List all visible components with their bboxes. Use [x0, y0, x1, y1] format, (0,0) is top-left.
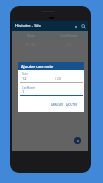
- button[interactable]: Note: [12, 31, 50, 40]
- staticText: / 20: [55, 76, 61, 80]
- button[interactable]: Search: [80, 23, 87, 30]
- button[interactable]: Coefficient: [50, 31, 88, 40]
- staticText: Note: [27, 33, 35, 38]
- button[interactable]: AJOUTER: [65, 102, 79, 108]
- staticText: Note: [22, 72, 28, 76]
- staticText: 1: [22, 89, 25, 94]
- staticText: Ajouter une note: [21, 64, 54, 69]
- staticText: 12: [22, 76, 27, 81]
- staticText: 9 / 20: [26, 42, 36, 47]
- staticText: Coefficient: [60, 33, 78, 38]
- staticText: ANNULER: [51, 103, 64, 107]
- staticText: 1.0: [66, 42, 72, 47]
- staticText: AJOUTER: [66, 103, 78, 107]
- button[interactable]: ANNULER: [50, 102, 65, 108]
- staticText: Coefficient: [22, 86, 36, 90]
- button[interactable]: Add note: [74, 137, 81, 144]
- staticText: Histoire - Séc: [15, 23, 41, 29]
- button[interactable]: Sort: [73, 24, 79, 30]
